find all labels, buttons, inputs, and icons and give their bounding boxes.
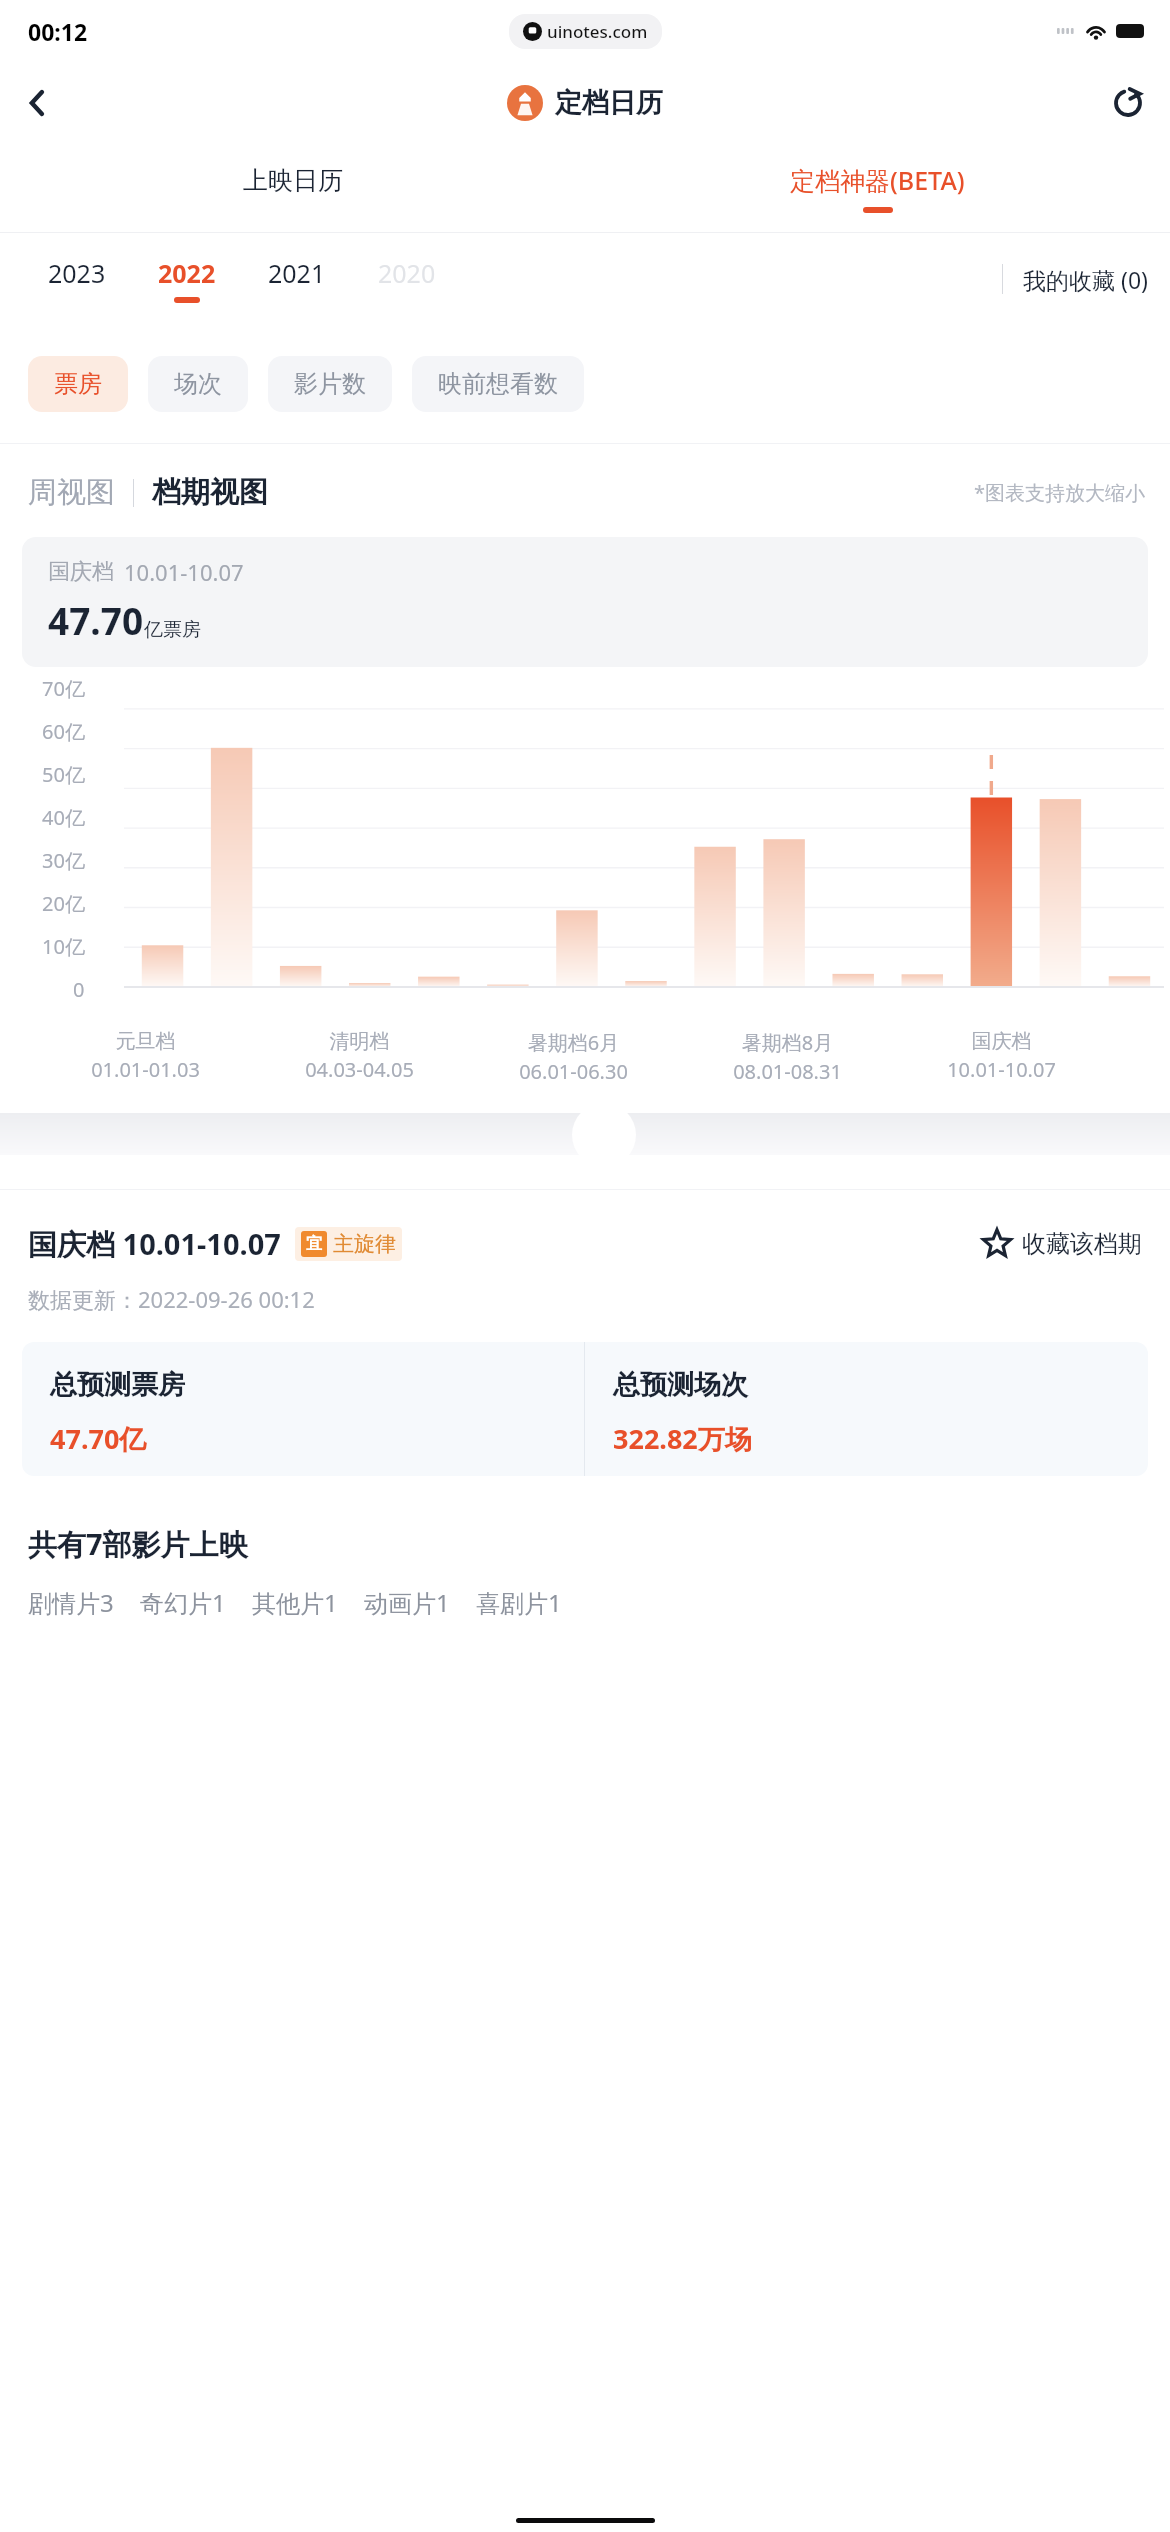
staticText: 2020 (378, 256, 436, 290)
button[interactable]: 收藏该档期 (982, 1229, 1142, 1259)
staticText: 暑期档6月 06.01-06.30 (519, 1029, 628, 1085)
button[interactable]: 2023 (30, 250, 124, 309)
staticText: 亿票房 (144, 618, 201, 642)
staticText: 30亿 (42, 847, 85, 874)
staticText: 定档神器(BETA) (790, 163, 965, 197)
staticText: 总预测场次 (613, 1368, 748, 1402)
staticText: 47.70 (48, 595, 144, 645)
staticText: 2023 (48, 256, 106, 290)
staticText: 其他片1 (252, 1586, 338, 1619)
staticText: 40亿 (42, 804, 85, 831)
staticText: 暑期档8月 08.01-08.31 (733, 1029, 842, 1085)
staticText: 2021 (268, 256, 326, 290)
staticText: 国庆档 10.01-10.07 (947, 1029, 1056, 1083)
staticText: 总预测票房 (50, 1368, 185, 1402)
button[interactable]: 2022 (140, 250, 234, 309)
staticText: 剧情片3 (28, 1586, 114, 1619)
staticText: 00:12 (28, 16, 88, 47)
staticText: 主旋律 (333, 1231, 396, 1257)
button[interactable]: 2021 (250, 250, 344, 309)
button[interactable]: 总预测场次 (585, 1342, 1148, 1476)
staticText: 映前想看数 (438, 369, 558, 399)
staticText: 0 (73, 976, 85, 1003)
staticText: *图表支持放大缩小 (974, 479, 1146, 506)
staticText: 47.70亿 (50, 1420, 147, 1457)
staticText: uinotes.com (547, 20, 648, 43)
staticText: 国庆档 10.01-10.07 (28, 1224, 281, 1264)
button[interactable]: 我的收藏 (0) (1023, 264, 1148, 295)
staticText: 上映日历 (243, 165, 343, 196)
staticText: 我的收藏 (0) (1023, 264, 1148, 295)
button[interactable]: 场次 (148, 356, 248, 412)
button[interactable]: Share (1100, 75, 1156, 131)
staticText: 档期视图 (152, 474, 268, 511)
staticText: 数据更新：2022-09-26 00:12 (28, 1284, 315, 1314)
staticText: 场次 (174, 369, 222, 399)
staticText: 国庆档 (48, 558, 114, 586)
staticText: 奇幻片1 (140, 1586, 226, 1619)
button[interactable]: 档期视图 (152, 474, 268, 511)
staticText: 票房 (54, 369, 102, 399)
button[interactable]: 票房 (28, 356, 128, 412)
staticText: 70亿 (42, 675, 85, 702)
staticText: 定档日历 (555, 86, 663, 120)
staticText: 动画片1 (364, 1586, 450, 1619)
staticText: 10.01-10.07 (124, 557, 244, 587)
button[interactable]: 影片数 (268, 356, 392, 412)
staticText: 周视图 (28, 474, 115, 511)
staticText: 宜 (306, 1234, 322, 1254)
staticText: 喜剧片1 (476, 1586, 562, 1619)
staticText: 10亿 (42, 933, 85, 960)
button[interactable]: 2020 (360, 250, 454, 309)
button[interactable]: 定档神器(BETA) (585, 144, 1170, 232)
staticText: 共有7部影片上映 (28, 1524, 248, 1564)
staticText: 60亿 (42, 718, 85, 745)
staticText: 322.82万场 (613, 1420, 752, 1457)
staticText: 20亿 (42, 890, 85, 917)
staticText: 元旦档 01.01-01.03 (91, 1029, 200, 1083)
staticText: 收藏该档期 (1022, 1229, 1142, 1259)
staticText: 50亿 (42, 761, 85, 788)
button[interactable]: Back (10, 75, 66, 131)
button[interactable]: 周视图 (28, 474, 115, 511)
staticText: 清明档 04.03-04.05 (305, 1029, 414, 1083)
staticText: 影片数 (294, 369, 366, 399)
button[interactable]: 总预测票房 (22, 1342, 584, 1476)
button[interactable]: 上映日历 (0, 144, 585, 232)
staticText: 2022 (158, 256, 216, 290)
button[interactable]: 映前想看数 (412, 356, 584, 412)
